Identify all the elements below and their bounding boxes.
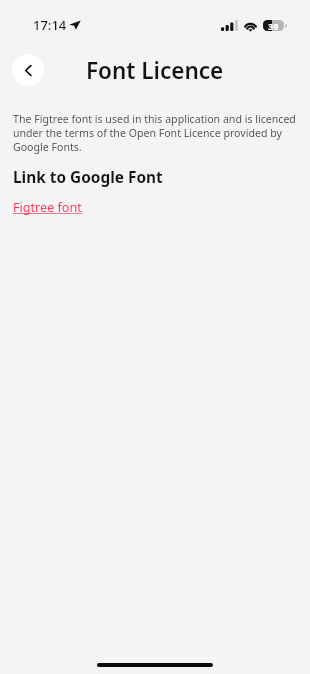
button[interactable]: Back bbox=[12, 54, 44, 86]
staticText: The Figtree font is used in this applica… bbox=[13, 112, 298, 154]
button[interactable]: Figtree font bbox=[13, 199, 82, 216]
staticText: 39 bbox=[268, 20, 279, 31]
staticText: Font Licence bbox=[86, 55, 224, 86]
staticText: Figtree font bbox=[13, 199, 82, 216]
staticText: 17:14 bbox=[33, 16, 67, 34]
staticText: Link to Google Font bbox=[13, 167, 163, 188]
